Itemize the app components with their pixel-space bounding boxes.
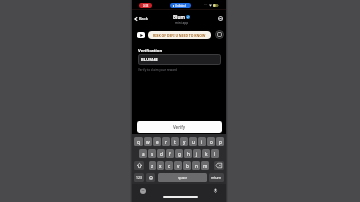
staticText: BLUM4E bbox=[141, 57, 158, 63]
button[interactable]: space bbox=[158, 173, 207, 182]
button[interactable]: v bbox=[174, 161, 182, 170]
staticText: p bbox=[219, 139, 222, 145]
staticText: 2:38 bbox=[143, 4, 149, 8]
staticText: s bbox=[151, 151, 154, 157]
button[interactable]: t bbox=[171, 137, 179, 146]
button[interactable]: o bbox=[207, 137, 215, 146]
staticText: RISK OF DEFI U NEED TO KNOW bbox=[153, 33, 206, 38]
staticText: return bbox=[211, 175, 222, 180]
staticText: Blum bbox=[173, 14, 185, 20]
button[interactable]: j bbox=[193, 149, 201, 158]
staticText: j bbox=[196, 151, 198, 157]
button[interactable]: f bbox=[166, 149, 174, 158]
staticText: b bbox=[186, 163, 189, 169]
button[interactable]: Dictation bbox=[213, 188, 218, 193]
button[interactable]: m bbox=[201, 161, 209, 170]
staticText: q bbox=[137, 139, 140, 145]
button[interactable]: r bbox=[162, 137, 170, 146]
staticText: mini app bbox=[175, 21, 189, 25]
button[interactable]: a bbox=[139, 149, 147, 158]
button[interactable]: x bbox=[157, 161, 164, 170]
staticText: x bbox=[159, 163, 162, 169]
staticText: i bbox=[201, 139, 203, 145]
staticText: z bbox=[151, 163, 154, 169]
staticText: ••• bbox=[204, 3, 208, 7]
staticText: Back bbox=[139, 16, 149, 21]
button[interactable]: Minimize bbox=[218, 16, 223, 21]
staticText: l bbox=[214, 151, 216, 157]
button[interactable]: n bbox=[192, 161, 200, 170]
staticText: Unlisted bbox=[175, 4, 186, 8]
button[interactable]: Keyboard key bbox=[134, 161, 144, 170]
button[interactable]: w bbox=[144, 137, 152, 146]
button[interactable]: z bbox=[149, 161, 156, 170]
staticText: a bbox=[142, 151, 145, 157]
staticText: k bbox=[205, 151, 208, 157]
staticText: space bbox=[178, 175, 188, 180]
staticText: v bbox=[177, 163, 180, 169]
staticText: w bbox=[146, 139, 150, 145]
staticText: e bbox=[156, 139, 159, 145]
staticText: c bbox=[168, 163, 171, 169]
button[interactable]: b bbox=[183, 161, 191, 170]
button[interactable]: d bbox=[157, 149, 165, 158]
button[interactable]: Play video bbox=[137, 32, 145, 38]
button[interactable]: u bbox=[189, 137, 197, 146]
button[interactable]: Keyboard key bbox=[146, 173, 155, 182]
button[interactable]: s bbox=[148, 149, 156, 158]
button[interactable]: Verify bbox=[137, 121, 222, 133]
staticText: t bbox=[174, 139, 176, 145]
staticText: u bbox=[192, 139, 195, 145]
staticText: r bbox=[165, 139, 167, 145]
staticText: h bbox=[187, 151, 190, 157]
button[interactable]: Open in browser bbox=[215, 30, 224, 39]
staticText: n bbox=[195, 163, 198, 169]
staticText: Verify to claim your reward bbox=[138, 68, 177, 72]
staticText: m bbox=[203, 163, 208, 169]
button[interactable]: y bbox=[180, 137, 188, 146]
button[interactable]: Keyboard key bbox=[214, 161, 224, 170]
button[interactable]: p bbox=[216, 137, 224, 146]
staticText: g bbox=[178, 151, 181, 157]
staticText: Verification bbox=[138, 48, 163, 54]
staticText: d bbox=[160, 151, 163, 157]
button[interactable]: Back bbox=[134, 16, 149, 21]
staticText: o bbox=[210, 139, 213, 145]
staticText: f bbox=[169, 151, 171, 157]
staticText: 123 bbox=[136, 175, 142, 180]
button[interactable]: c bbox=[165, 161, 173, 170]
staticText: y bbox=[183, 139, 186, 145]
staticText: Verify bbox=[173, 124, 186, 130]
button[interactable]: e bbox=[153, 137, 161, 146]
button[interactable]: k bbox=[202, 149, 210, 158]
button[interactable]: RISK OF DEFI U NEED TO KNOW bbox=[148, 31, 211, 39]
button[interactable]: h bbox=[184, 149, 192, 158]
button[interactable]: Keyboard key bbox=[134, 173, 144, 182]
button[interactable]: Keyboard key bbox=[209, 173, 224, 182]
button[interactable]: q bbox=[134, 137, 143, 146]
button[interactable]: g bbox=[175, 149, 183, 158]
button[interactable]: BLUM4E bbox=[138, 54, 221, 65]
button[interactable]: i bbox=[198, 137, 206, 146]
button[interactable]: Emoji bbox=[140, 188, 146, 194]
button[interactable]: l bbox=[211, 149, 219, 158]
